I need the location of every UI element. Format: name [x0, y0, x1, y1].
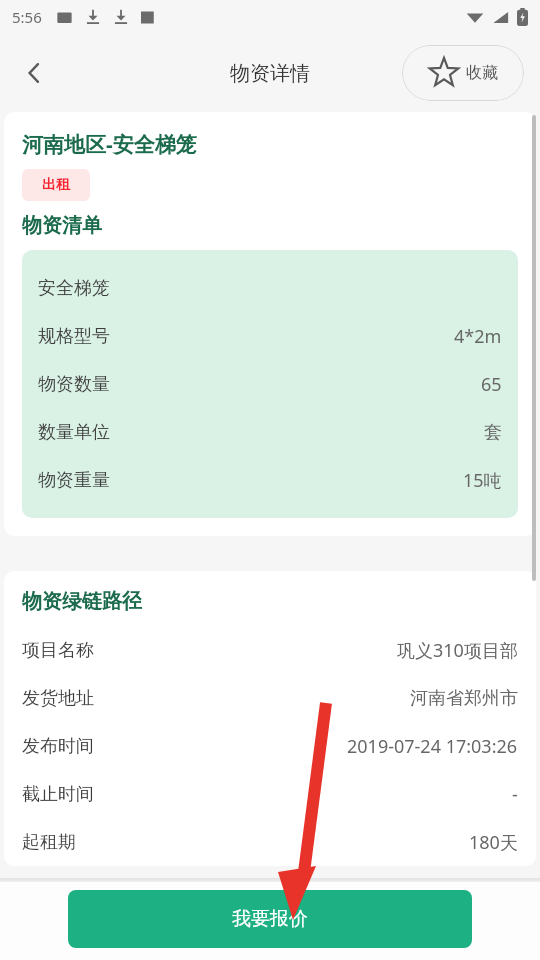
staticText: 收藏	[466, 63, 498, 83]
staticText: 4*2m	[454, 324, 502, 349]
staticText: 物资绿链路径	[22, 589, 142, 614]
staticText: 河南地区-安全梯笼	[22, 130, 197, 159]
staticText: 河南省郑州市	[410, 687, 518, 710]
staticText: 65	[481, 372, 502, 397]
staticText: 15吨	[463, 468, 502, 493]
staticText: 物资详情	[230, 61, 310, 86]
staticText: 物资清单	[22, 213, 102, 238]
staticText: 项目名称	[22, 639, 94, 662]
staticText: 物资数量	[38, 373, 110, 396]
staticText: 数量单位	[38, 421, 110, 444]
staticText: 截止时间	[22, 783, 94, 806]
staticText: 巩义310项目部	[397, 638, 518, 663]
staticText: 起租期	[22, 831, 76, 854]
staticText: 我要报价	[232, 907, 308, 931]
staticText: 安全梯笼	[38, 277, 110, 300]
button[interactable]: 我要报价	[68, 890, 472, 948]
staticText: 发布时间	[22, 735, 94, 758]
staticText: 规格型号	[38, 325, 110, 348]
staticText: 发货地址	[22, 687, 94, 710]
staticText: -	[512, 782, 518, 807]
staticText: 物资重量	[38, 469, 110, 492]
staticText: 5:56	[12, 7, 42, 27]
staticText: 2019-07-24 17:03:26	[347, 734, 518, 759]
staticText: 180天	[469, 830, 518, 855]
button[interactable]: 收藏	[402, 45, 524, 101]
button[interactable]: Back	[10, 49, 58, 97]
staticText: 出租	[42, 176, 70, 194]
staticText: 套	[484, 421, 502, 444]
